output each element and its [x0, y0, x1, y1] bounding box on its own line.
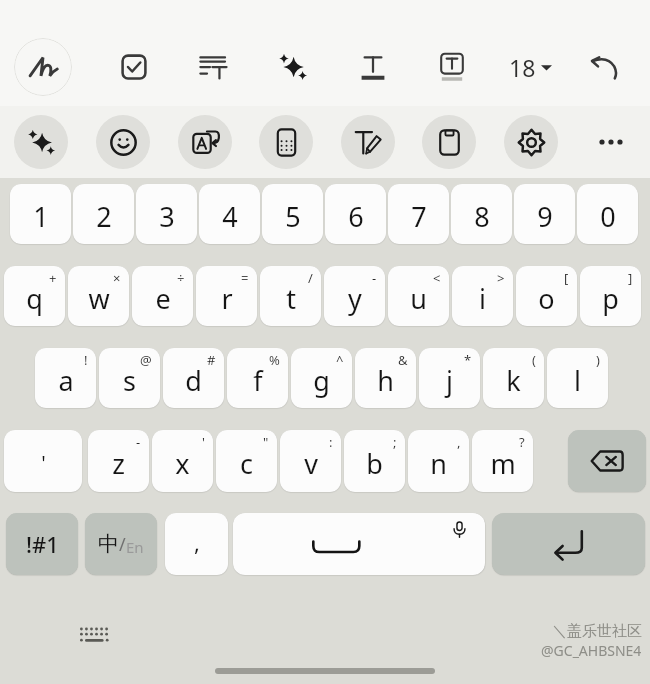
button[interactable]: More options — [584, 115, 638, 169]
staticText: 1 — [33, 198, 49, 235]
button[interactable]: Settings — [504, 115, 558, 169]
button[interactable]: Switch language — [85, 513, 157, 575]
button[interactable]: Handwriting — [14, 38, 72, 96]
button[interactable]: 7 — [388, 184, 449, 244]
button[interactable]: Enter — [492, 513, 645, 575]
staticText: ? — [519, 433, 525, 451]
button[interactable]: h — [355, 348, 416, 408]
staticText: - — [372, 269, 377, 287]
button[interactable]: u — [388, 266, 449, 326]
staticText: y — [348, 280, 362, 317]
staticText: % — [269, 351, 280, 369]
button[interactable]: i — [452, 266, 513, 326]
staticText: × — [113, 269, 121, 287]
staticText: + — [49, 269, 57, 287]
button[interactable]: ' — [4, 430, 82, 492]
staticText: 18 — [509, 52, 536, 83]
button[interactable]: Symbols — [6, 513, 78, 575]
staticText: g — [313, 362, 330, 399]
button[interactable]: m — [472, 430, 533, 492]
staticText: 7 — [411, 198, 427, 235]
button[interactable]: d — [163, 348, 224, 408]
button[interactable]: e — [132, 266, 193, 326]
staticText: 8 — [474, 198, 490, 235]
button[interactable]: Effects — [14, 115, 68, 169]
button[interactable]: n — [408, 430, 469, 492]
staticText: 9 — [537, 198, 553, 235]
button[interactable]: z — [88, 430, 149, 492]
button[interactable]: Space — [233, 513, 485, 575]
staticText: s — [123, 362, 136, 399]
button[interactable]: b — [344, 430, 405, 492]
button[interactable]: 18 — [495, 38, 565, 96]
button[interactable]: Handwriting input — [341, 115, 395, 169]
staticText: 6 — [348, 198, 364, 235]
staticText: ! — [84, 351, 88, 369]
staticText: d — [185, 362, 202, 399]
button[interactable]: 5 — [262, 184, 323, 244]
staticText: ; — [393, 433, 397, 451]
staticText: ] — [628, 269, 633, 287]
button[interactable]: t — [260, 266, 321, 326]
button[interactable]: 8 — [451, 184, 512, 244]
button[interactable]: l — [547, 348, 608, 408]
staticText: 中 — [98, 531, 119, 557]
button[interactable]: Emoji — [96, 115, 150, 169]
staticText: l — [574, 362, 581, 399]
staticText: " — [263, 433, 269, 451]
button[interactable]: 4 — [199, 184, 260, 244]
button[interactable]: w — [68, 266, 129, 326]
button[interactable]: Undo — [575, 38, 633, 96]
staticText: ' — [202, 433, 205, 451]
button[interactable]: 3 — [136, 184, 197, 244]
button[interactable]: Translate — [178, 115, 232, 169]
button[interactable]: v — [280, 430, 341, 492]
button[interactable]: 9 — [514, 184, 575, 244]
button[interactable]: a — [35, 348, 96, 408]
button[interactable]: , — [165, 513, 228, 575]
button[interactable]: 6 — [325, 184, 386, 244]
button[interactable]: Keyboard layout — [72, 620, 116, 650]
staticText: ' — [41, 449, 46, 476]
staticText: = — [241, 269, 249, 287]
button[interactable]: AI effects — [264, 38, 322, 96]
button[interactable]: Text underline — [344, 38, 402, 96]
button[interactable]: s — [99, 348, 160, 408]
staticText: ＼盖乐世社区 — [552, 622, 642, 641]
staticText: > — [497, 269, 505, 287]
button[interactable]: Clipboard — [422, 115, 476, 169]
button[interactable]: Checkbox — [105, 38, 163, 96]
button[interactable]: g — [291, 348, 352, 408]
staticText: # — [207, 351, 216, 369]
staticText: @ — [140, 351, 152, 369]
button[interactable]: Text box — [423, 38, 481, 96]
button[interactable]: 2 — [73, 184, 134, 244]
button[interactable]: p — [580, 266, 641, 326]
button[interactable]: k — [483, 348, 544, 408]
staticText: 0 — [600, 198, 616, 235]
button[interactable]: r — [196, 266, 257, 326]
staticText: j — [446, 362, 453, 399]
button[interactable]: j — [419, 348, 480, 408]
button[interactable]: x — [152, 430, 213, 492]
button[interactable]: Backspace — [568, 430, 646, 492]
staticText: !#1 — [26, 529, 59, 559]
button[interactable]: f — [227, 348, 288, 408]
button[interactable]: 1 — [10, 184, 71, 244]
button[interactable]: Number pad — [259, 115, 313, 169]
button[interactable]: 0 — [577, 184, 638, 244]
staticText: / — [308, 269, 313, 287]
staticText: z — [112, 445, 125, 482]
button[interactable]: q — [4, 266, 65, 326]
button[interactable]: Paragraph — [184, 38, 242, 96]
button[interactable]: o — [516, 266, 577, 326]
staticText: ÷ — [177, 269, 185, 287]
staticText: ) — [596, 351, 600, 369]
button[interactable]: c — [216, 430, 277, 492]
staticText: a — [58, 362, 74, 399]
staticText: [ — [564, 269, 569, 287]
staticText: @GC_AHBSNE4 — [541, 641, 642, 660]
staticText: u — [410, 280, 427, 317]
button[interactable]: y — [324, 266, 385, 326]
staticText: x — [175, 445, 190, 482]
